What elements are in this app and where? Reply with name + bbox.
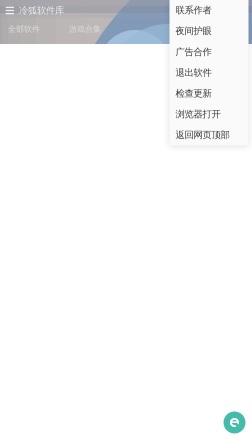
staticText: 全部软件 [8, 24, 40, 34]
staticText: 夜间护眼 [175, 25, 211, 37]
button[interactable]: 浏览器打开 [169, 104, 248, 125]
staticText: 返回网页顶部 [175, 129, 229, 141]
staticText: 游戏合集 [69, 24, 101, 34]
button[interactable]: 联系作者 [169, 0, 248, 21]
staticText: 浏览器打开 [175, 108, 220, 120]
staticText: 检查更新 [175, 88, 211, 99]
button[interactable]: 广告合作 [169, 41, 248, 62]
button[interactable]: 游戏合集 [69, 24, 101, 34]
button[interactable]: Menu [0, 0, 19, 21]
button[interactable]: 退出软件 [169, 62, 248, 83]
staticText: 广告合作 [175, 46, 211, 58]
button[interactable]: 检查更新 [169, 83, 248, 104]
staticText: 冷狐软件库 [19, 5, 64, 16]
button[interactable]: 返回网页顶部 [169, 125, 248, 145]
button[interactable]: 夜间护眼 [169, 21, 248, 41]
staticText: 联系作者 [175, 4, 211, 16]
button[interactable]: Open in browser [223, 411, 245, 433]
button[interactable]: 全部软件 [8, 24, 40, 34]
staticText: 退出软件 [175, 67, 211, 78]
